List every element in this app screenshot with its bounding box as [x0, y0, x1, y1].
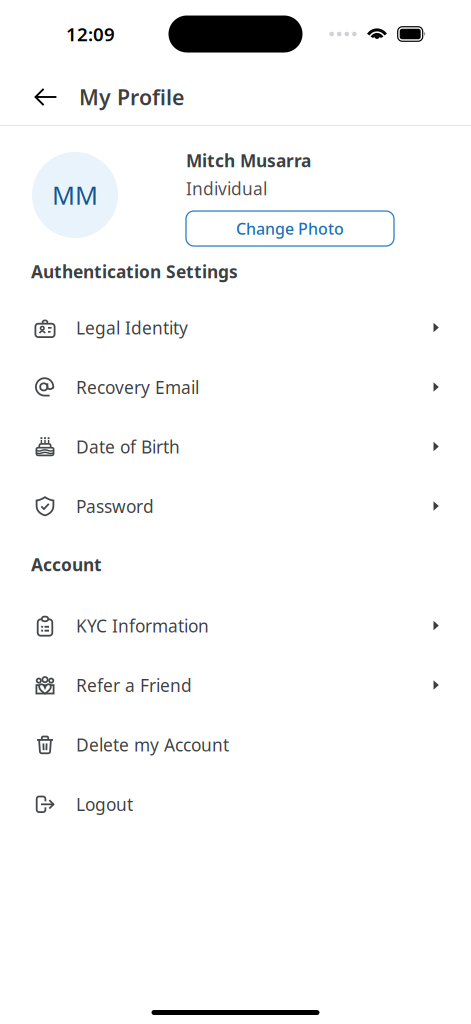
staticText: Recovery Email — [76, 376, 199, 399]
staticText: Mitch Musarra — [186, 149, 311, 172]
staticText: Password — [76, 495, 154, 518]
button[interactable]: Back — [0, 70, 79, 124]
button[interactable]: KYC Information — [0, 596, 471, 656]
staticText: My Profile — [79, 83, 184, 111]
staticText: Change Photo — [236, 218, 344, 239]
button[interactable]: Recovery Email — [0, 358, 471, 417]
staticText: Account — [31, 553, 102, 576]
staticText: Individual — [186, 177, 267, 200]
button[interactable]: Password — [0, 477, 471, 536]
staticText: Logout — [76, 793, 133, 816]
staticText: MM — [52, 178, 98, 212]
staticText: Refer a Friend — [76, 674, 192, 697]
staticText: Authentication Settings — [31, 260, 238, 283]
button[interactable]: Legal Identity — [0, 298, 471, 358]
button[interactable]: Delete my Account — [0, 715, 471, 775]
staticText: Delete my Account — [76, 733, 229, 756]
staticText: Date of Birth — [76, 435, 180, 458]
button[interactable]: Change Photo — [186, 211, 394, 246]
button[interactable]: Logout — [0, 775, 471, 834]
staticText: Legal Identity — [76, 316, 188, 339]
staticText: 12:09 — [66, 22, 115, 46]
button[interactable]: Date of Birth — [0, 417, 471, 477]
button[interactable]: Refer a Friend — [0, 656, 471, 715]
staticText: KYC Information — [76, 614, 209, 637]
